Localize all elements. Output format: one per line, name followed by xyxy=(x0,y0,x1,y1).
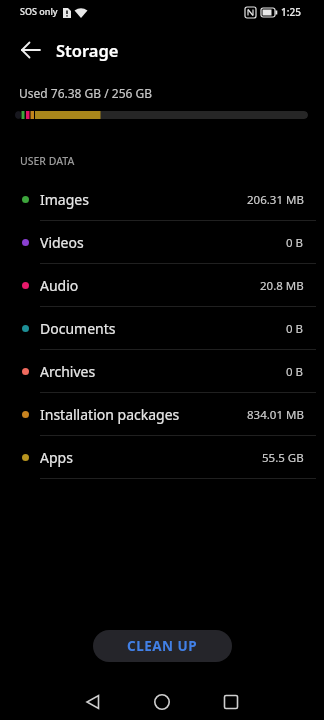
button[interactable]: Apps xyxy=(0,436,324,479)
button[interactable] xyxy=(69,684,117,720)
staticText: 20.8 MB xyxy=(260,278,304,294)
staticText: Documents xyxy=(40,319,116,338)
staticText: 0 B xyxy=(286,235,304,251)
staticText: USER DATA xyxy=(20,154,75,168)
button[interactable]: Documents xyxy=(0,307,324,350)
staticText: SOS only xyxy=(20,5,58,17)
button[interactable]: Archives xyxy=(0,350,324,393)
button[interactable]: CLEAN UP xyxy=(93,630,232,662)
staticText: Archives xyxy=(40,362,96,381)
staticText: 834.01 MB xyxy=(247,407,304,423)
staticText: 0 B xyxy=(286,321,304,337)
button[interactable] xyxy=(18,38,44,64)
staticText: Videos xyxy=(40,233,84,252)
staticText: Storage xyxy=(56,39,119,61)
staticText: 1:25 xyxy=(281,5,301,19)
button[interactable] xyxy=(138,684,186,720)
button[interactable]: Videos xyxy=(0,221,324,264)
staticText: Audio xyxy=(40,276,79,295)
staticText: Apps xyxy=(40,448,73,467)
button[interactable]: Images xyxy=(0,178,324,221)
staticText: Used 76.38 GB / 256 GB xyxy=(19,85,153,101)
staticText: Installation packages xyxy=(40,405,180,424)
staticText: 55.5 GB xyxy=(262,450,304,466)
staticText: Images xyxy=(40,190,89,209)
staticText: 206.31 MB xyxy=(247,192,304,208)
button[interactable] xyxy=(207,684,255,720)
button[interactable]: Installation packages xyxy=(0,393,324,436)
staticText: CLEAN UP xyxy=(127,637,198,655)
staticText: 0 B xyxy=(286,364,304,380)
button[interactable]: Audio xyxy=(0,264,324,307)
